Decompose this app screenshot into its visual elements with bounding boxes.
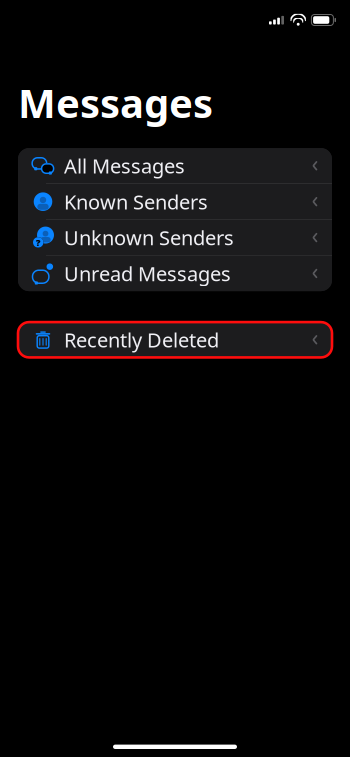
staticText: Unread Messages bbox=[64, 260, 231, 287]
button[interactable]: All Messages bbox=[18, 148, 332, 183]
button[interactable]: ? bbox=[18, 220, 332, 255]
staticText: Recently Deleted bbox=[64, 326, 219, 353]
staticText: Messages bbox=[18, 76, 213, 129]
staticText: Known Senders bbox=[64, 188, 208, 215]
button[interactable]: Recently Deleted bbox=[18, 322, 332, 357]
button[interactable]: Known Senders bbox=[18, 184, 332, 219]
button[interactable]: Unread Messages bbox=[18, 256, 332, 291]
staticText: All Messages bbox=[64, 152, 185, 179]
staticText: Unknown Senders bbox=[64, 224, 234, 251]
staticText: ? bbox=[36, 236, 41, 249]
